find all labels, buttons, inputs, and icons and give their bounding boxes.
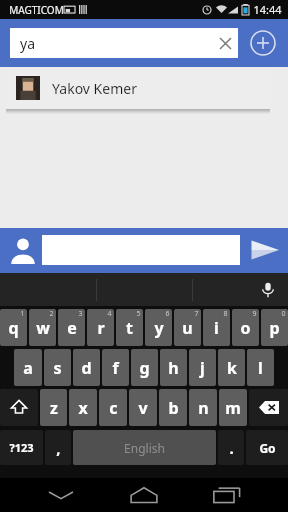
staticText: p — [269, 317, 280, 339]
button[interactable]: u — [174, 309, 201, 346]
button[interactable]: c — [99, 389, 127, 426]
staticText: c — [109, 397, 118, 419]
button[interactable]: Go — [246, 430, 288, 465]
staticText: z — [50, 397, 58, 419]
staticText: y — [154, 317, 164, 339]
button[interactable]: d — [73, 349, 100, 386]
staticText: 14:44 — [253, 2, 282, 17]
staticText: f — [112, 357, 119, 379]
staticText: h — [168, 357, 179, 379]
button[interactable]: v — [129, 389, 157, 426]
button[interactable]: h — [160, 349, 187, 386]
button[interactable]: s — [44, 349, 71, 386]
staticText: 9 — [252, 309, 257, 319]
staticText: 3 — [78, 309, 83, 319]
button[interactable]: r — [87, 309, 114, 346]
button[interactable]: n — [189, 389, 217, 426]
staticText: MAGTICOM — [9, 3, 64, 17]
staticText: e — [67, 317, 77, 339]
staticText: . — [229, 438, 234, 458]
button[interactable]: j — [189, 349, 216, 386]
staticText: q — [8, 317, 19, 339]
button[interactable]: o — [232, 309, 259, 346]
button[interactable]: Recent apps — [205, 478, 249, 512]
staticText: k — [227, 357, 237, 379]
staticText: g — [139, 357, 150, 379]
staticText: Go — [259, 440, 276, 456]
staticText: 5 — [136, 309, 141, 319]
button[interactable]: ya — [10, 28, 238, 58]
button[interactable]: English — [73, 430, 216, 465]
staticText: l — [258, 357, 263, 379]
staticText: n — [198, 397, 209, 419]
staticText: t — [126, 317, 133, 339]
button[interactable]: f — [102, 349, 129, 386]
button[interactable]: a — [14, 349, 42, 386]
staticText: ya — [20, 34, 35, 53]
staticText: w — [36, 317, 50, 339]
staticText: v — [138, 397, 148, 419]
staticText: a — [23, 357, 33, 379]
staticText: English — [124, 440, 165, 456]
staticText: u — [182, 317, 193, 339]
button[interactable]: g — [131, 349, 158, 386]
button[interactable]: m — [219, 389, 247, 426]
button[interactable]: i — [203, 309, 230, 346]
staticText: 1 — [20, 309, 25, 319]
staticText: m — [225, 397, 241, 419]
staticText: d — [81, 357, 92, 379]
button[interactable]: Send — [246, 231, 284, 269]
button[interactable]: Yakov Kemer — [6, 67, 270, 109]
staticText: 0 — [281, 309, 286, 319]
staticText: j — [200, 357, 205, 379]
button[interactable]: , — [45, 430, 71, 465]
button[interactable]: Add — [248, 28, 278, 58]
button[interactable]: Home — [122, 478, 166, 512]
staticText: Yakov Kemer — [52, 79, 137, 98]
button[interactable]: ?123 — [0, 430, 43, 465]
staticText: i — [214, 317, 219, 339]
button[interactable]: z — [40, 389, 67, 426]
button[interactable]: Shift — [0, 389, 38, 426]
staticText: b — [168, 397, 179, 419]
staticText: , — [56, 438, 61, 458]
button[interactable]: k — [218, 349, 245, 386]
button[interactable]: e — [58, 309, 85, 346]
button[interactable]: w — [29, 309, 56, 346]
staticText: ?123 — [9, 440, 34, 455]
button[interactable]: q — [0, 309, 27, 346]
button[interactable]: Voice input — [256, 278, 280, 302]
staticText: s — [53, 357, 62, 379]
button[interactable]: Backspace — [249, 389, 288, 426]
staticText: r — [97, 317, 105, 339]
button[interactable]: Back — [39, 478, 83, 512]
staticText: 4 — [107, 309, 112, 319]
staticText: 2 — [49, 309, 54, 319]
button[interactable]: . — [218, 430, 244, 465]
staticText: x — [78, 397, 88, 419]
staticText: 7 — [194, 309, 199, 319]
button[interactable]: p — [261, 309, 288, 346]
staticText: 8 — [223, 309, 228, 319]
button[interactable]: t — [116, 309, 143, 346]
button[interactable]: Clear — [212, 30, 238, 56]
button[interactable]: Profile — [6, 233, 40, 267]
button[interactable]: l — [247, 349, 274, 386]
staticText: o — [240, 317, 251, 339]
button[interactable]: x — [69, 389, 97, 426]
staticText: 6 — [165, 309, 170, 319]
button[interactable]: b — [159, 389, 187, 426]
button[interactable]: y — [145, 309, 172, 346]
